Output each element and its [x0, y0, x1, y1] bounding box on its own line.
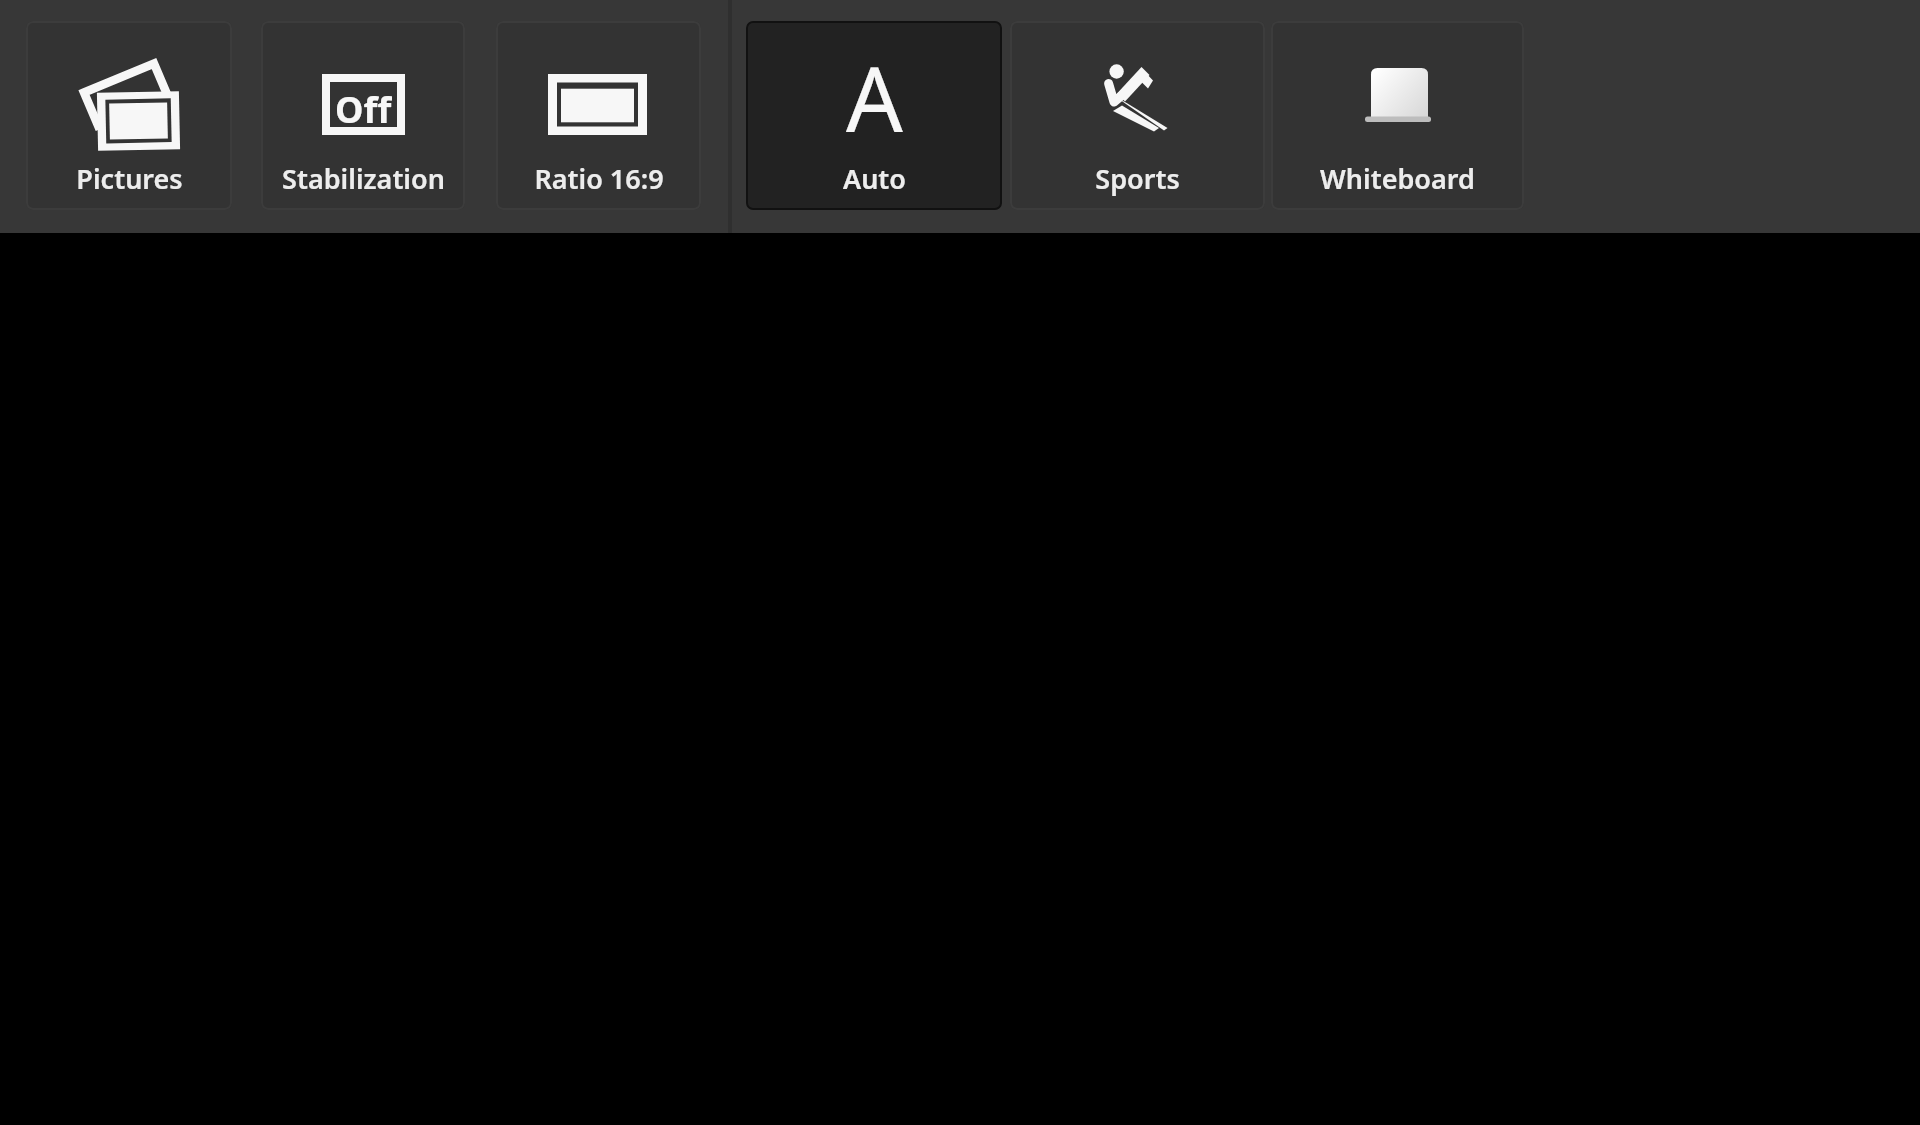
staticText: Off: [335, 85, 392, 130]
other: Whiteboard: [1365, 68, 1431, 124]
staticText: Pictures: [76, 160, 183, 197]
staticText: Stabilization: [282, 160, 445, 197]
staticText: Whiteboard: [1320, 160, 1475, 197]
button[interactable]: Pictures: [26, 21, 232, 210]
other: Ratio 16:9: [548, 74, 647, 135]
staticText: Sports: [1095, 160, 1180, 197]
button[interactable]: Ratio 16:9: [496, 21, 701, 210]
other: Sports: [1104, 58, 1168, 132]
staticText: Ratio 16:9: [534, 160, 664, 197]
button[interactable]: Sports: [1010, 21, 1265, 210]
staticText: Auto: [843, 160, 906, 197]
other: Pictures: [78, 57, 185, 155]
button[interactable]: A: [746, 21, 1002, 210]
other: Stabilization: [322, 74, 405, 135]
staticText: A: [846, 37, 903, 142]
button[interactable]: Whiteboard: [1271, 21, 1524, 210]
button[interactable]: Stabilization: [261, 21, 465, 210]
